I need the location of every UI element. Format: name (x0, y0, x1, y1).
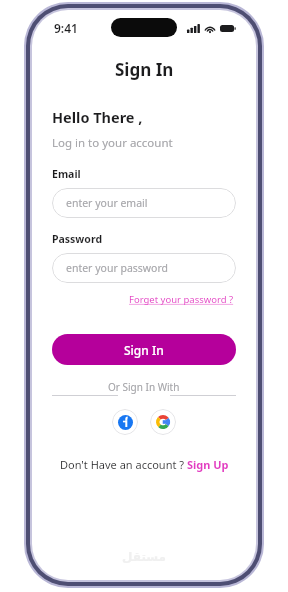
button[interactable]: Forget your password ? (127, 291, 236, 308)
staticText: Email (52, 167, 81, 181)
button[interactable]: Sign in with Google (150, 409, 176, 435)
staticText: enter your password (66, 261, 169, 275)
staticText: Password (52, 232, 103, 246)
button[interactable]: Sign in with Facebook (112, 409, 138, 435)
button[interactable]: Don't Have an account ? Sign Up (58, 455, 231, 474)
staticText: 9:41 (54, 20, 78, 36)
staticText: مستقل (122, 550, 166, 564)
staticText: Sign In (124, 342, 164, 358)
staticText: enter your email (66, 196, 148, 210)
button[interactable]: enter your email (52, 188, 236, 218)
staticText: Sign In (115, 58, 174, 81)
staticText: Forget your password ? (129, 293, 234, 306)
staticText: Hello There , (52, 107, 143, 127)
staticText: Or Sign In With (108, 380, 180, 394)
staticText: Log in to your account (52, 135, 173, 151)
button[interactable]: Sign In (52, 334, 236, 365)
staticText: Don't Have an account ? Sign Up (60, 457, 229, 472)
button[interactable]: enter your password (52, 253, 236, 283)
